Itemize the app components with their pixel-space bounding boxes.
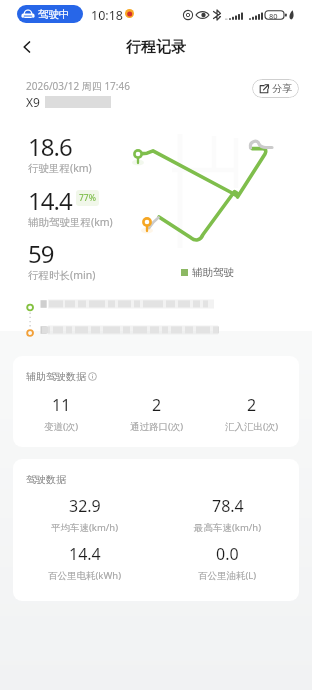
staticText: 辅助驾驶数据 bbox=[26, 370, 86, 383]
staticText: 行程时长(min) bbox=[28, 268, 96, 282]
staticText: 2 bbox=[152, 394, 162, 416]
staticText: 14.4 bbox=[69, 543, 101, 565]
staticText: X9 bbox=[26, 94, 44, 110]
staticText: 汇入汇出(次) bbox=[225, 420, 279, 433]
staticText: 77% bbox=[79, 192, 96, 204]
staticText: 驾驶中 bbox=[38, 8, 70, 21]
staticText: 分享 bbox=[272, 82, 292, 95]
staticText: 行驶里程(km) bbox=[28, 161, 92, 175]
button[interactable] bbox=[40, 325, 220, 335]
staticText: 百公里电耗(kWh) bbox=[48, 569, 121, 582]
staticText: 10:18 bbox=[91, 7, 123, 24]
staticText: 0.0 bbox=[216, 543, 239, 565]
staticText: 最高车速(km/h) bbox=[194, 521, 262, 534]
staticText: 行程记录 bbox=[126, 38, 186, 57]
staticText: 11 bbox=[52, 394, 71, 416]
button[interactable] bbox=[40, 299, 216, 309]
staticText: 2026/03/12 周四 17:46 bbox=[26, 79, 130, 93]
staticText: 78.4 bbox=[212, 495, 244, 517]
button[interactable]: Back bbox=[8, 28, 46, 66]
staticText: 32.9 bbox=[69, 495, 101, 517]
staticText: 通过路口(次) bbox=[130, 420, 184, 433]
staticText: 辅助驾驶 bbox=[192, 266, 234, 279]
button[interactable]: 分享 bbox=[252, 79, 299, 98]
staticText: 2 bbox=[247, 394, 257, 416]
staticText: 变道(次) bbox=[44, 420, 79, 433]
staticText: 驾驶数据 bbox=[26, 473, 66, 486]
staticText: 辅助驾驶里程(km) bbox=[28, 215, 113, 229]
staticText: 18.6 bbox=[28, 130, 72, 163]
staticText: 百公里油耗(L) bbox=[198, 569, 257, 582]
staticText: 14.4 bbox=[28, 184, 72, 217]
staticText: 平均车速(km/h) bbox=[51, 521, 119, 534]
staticText: 80 bbox=[269, 11, 278, 21]
staticText: 59 bbox=[28, 237, 54, 270]
button[interactable]: Driving status bbox=[17, 5, 83, 23]
